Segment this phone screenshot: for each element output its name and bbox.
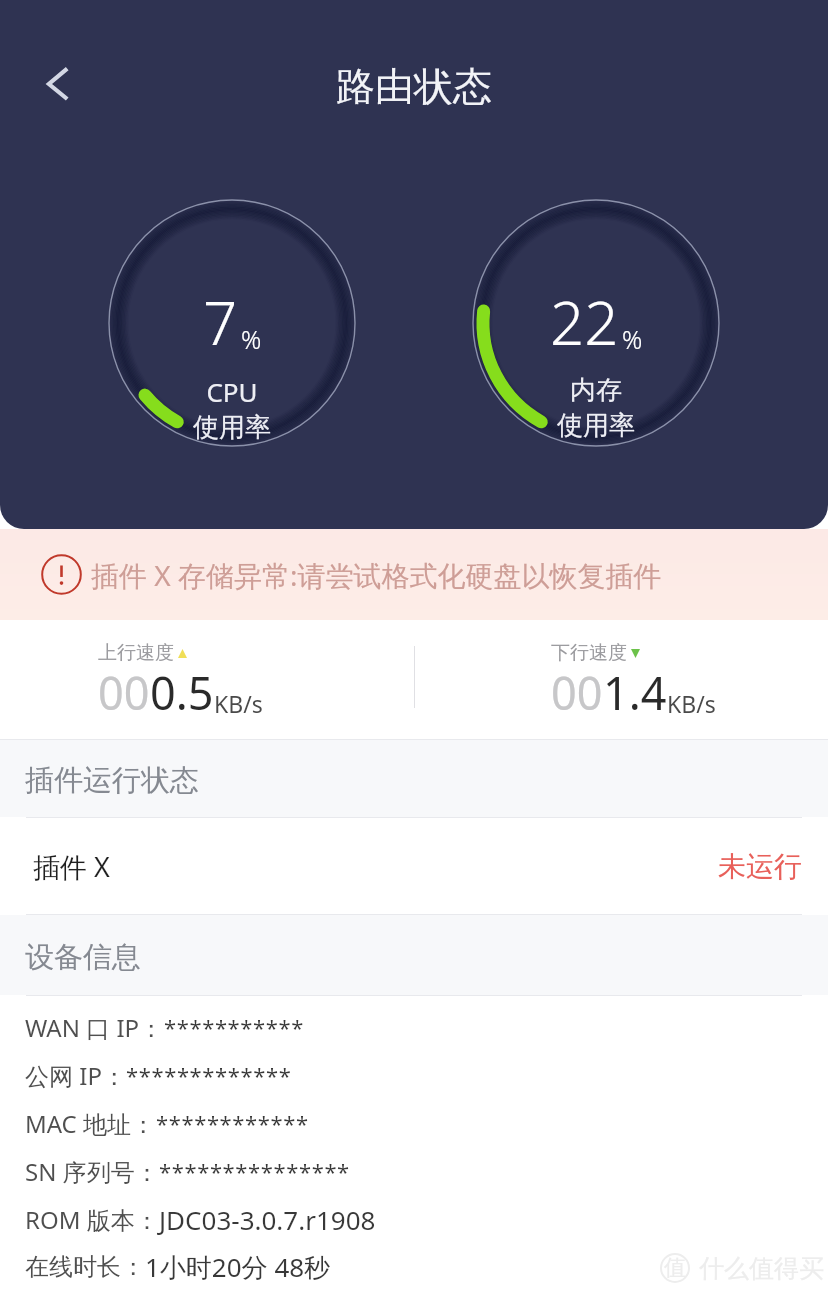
staticText: 值 <box>664 1254 686 1282</box>
staticText: ************ <box>156 1108 309 1138</box>
staticText: 插件运行状态 <box>25 762 199 799</box>
staticText: 上行速度 <box>98 641 174 665</box>
button[interactable]: 插件 X <box>0 818 828 914</box>
staticText: 0.5 <box>150 662 214 723</box>
button[interactable]: Back <box>22 48 94 120</box>
staticText: 7 <box>203 281 238 363</box>
staticText: 22 <box>550 281 619 363</box>
staticText: 插件 X 存储异常:请尝试格式化硬盘以恢复插件 <box>91 556 662 594</box>
staticText: 未运行 <box>718 849 802 884</box>
staticText: 使用率 <box>557 409 635 442</box>
staticText: ROM 版本： <box>25 1203 159 1236</box>
staticText: SN 序列号： <box>25 1155 159 1188</box>
staticText: 插件 X <box>33 848 110 885</box>
staticText: JDC03-3.0.7.r1908 <box>159 1202 376 1237</box>
staticText: WAN 口 IP： <box>25 1011 164 1044</box>
staticText: 设备信息 <box>25 939 141 976</box>
staticText: 00 <box>551 662 603 723</box>
staticText: 下行速度 <box>551 641 627 665</box>
staticText: CPU <box>206 374 258 409</box>
staticText: 1小时20分 48秒 <box>145 1249 331 1285</box>
staticText: 路由状态 <box>0 62 828 111</box>
staticText: % <box>622 322 643 356</box>
staticText: 1.4 <box>603 662 667 723</box>
staticText: 公网 IP： <box>25 1059 126 1092</box>
staticText: 内存 <box>570 374 622 407</box>
staticText: % <box>241 322 262 356</box>
staticText: 使用率 <box>193 411 271 444</box>
staticText: 00 <box>98 662 150 723</box>
staticText: MAC 地址： <box>25 1107 156 1140</box>
staticText: KB/s <box>667 688 716 719</box>
staticText: *************** <box>159 1156 350 1186</box>
staticText: *********** <box>164 1012 304 1042</box>
staticText: ************* <box>126 1060 292 1090</box>
staticText: 什么值得买 <box>699 1253 824 1284</box>
staticText: KB/s <box>214 688 263 719</box>
staticText: 在线时长： <box>25 1252 145 1282</box>
